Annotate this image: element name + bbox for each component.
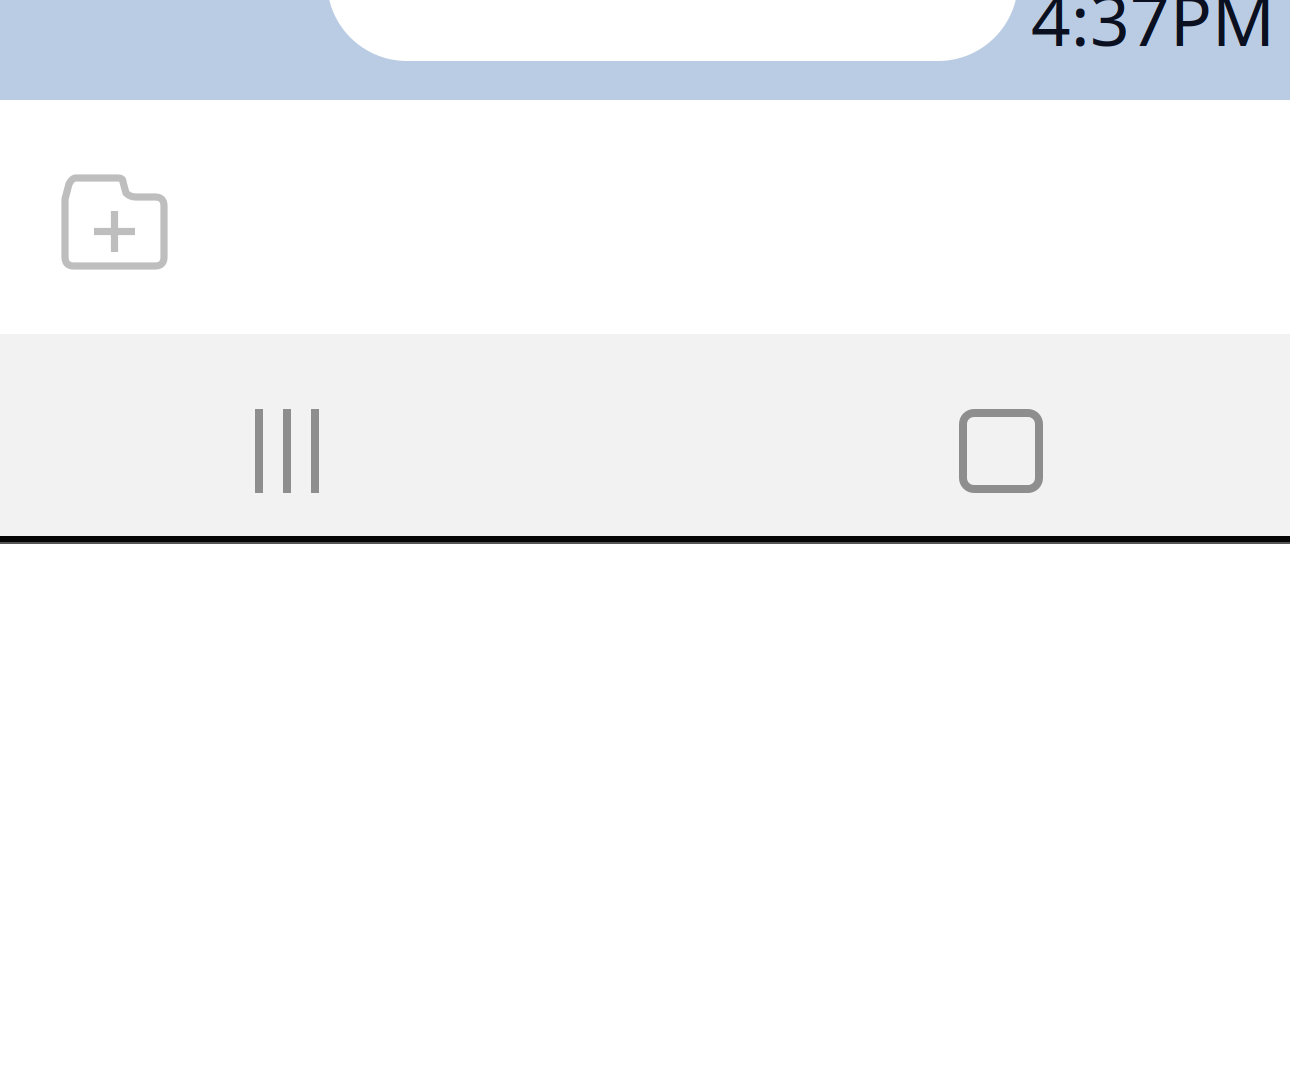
button[interactable]: Column View [255,409,319,493]
button[interactable]: Single Page View [959,409,1043,493]
button[interactable]: New Folder [61,176,168,270]
staticText: 4:37PM [1031,0,1275,65]
